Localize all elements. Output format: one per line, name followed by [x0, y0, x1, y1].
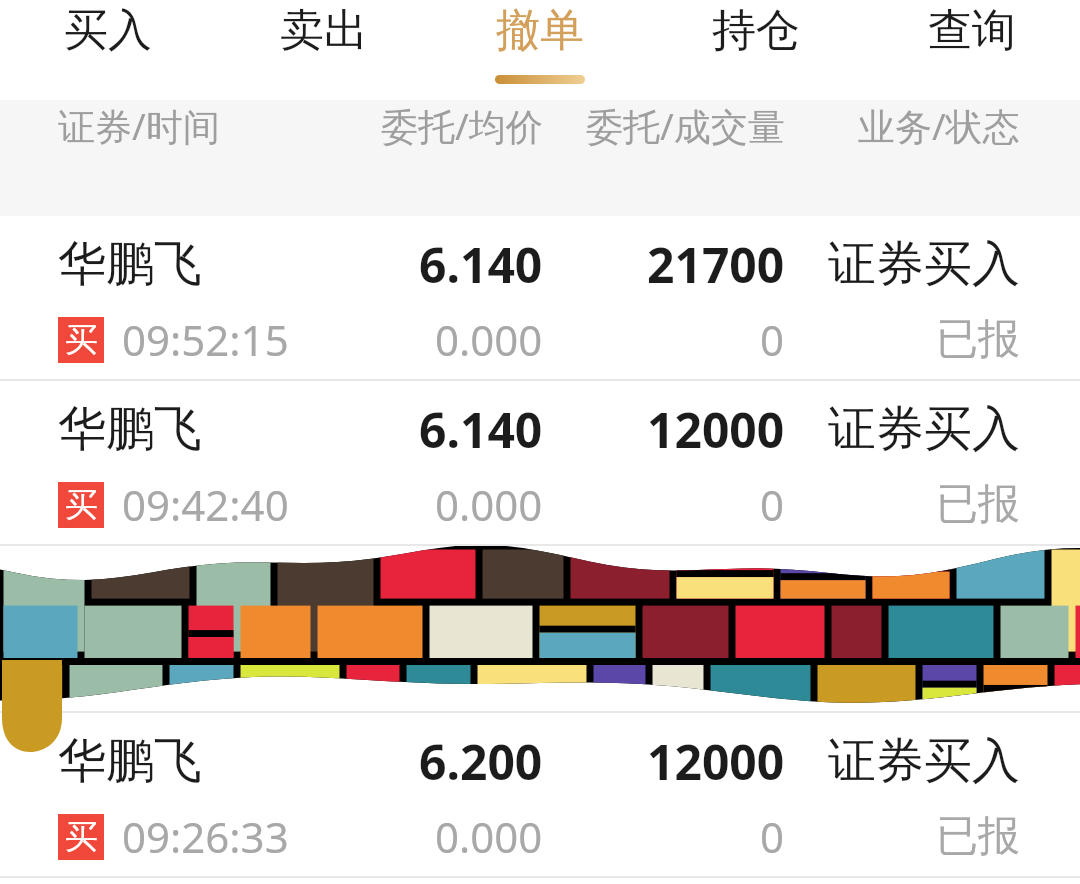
staticText: 持仓	[712, 3, 800, 58]
staticText: 12000	[647, 397, 785, 462]
button[interactable]: 华鹏飞	[0, 216, 1080, 379]
staticText: 12000	[647, 729, 785, 794]
button[interactable]: 卖出	[216, 0, 432, 100]
button[interactable]: 撤单	[432, 0, 648, 100]
staticText: 买	[65, 816, 98, 858]
staticText: 证券买入	[828, 399, 1020, 459]
staticText: 查询	[928, 3, 1016, 58]
staticText: 卖出	[280, 3, 368, 58]
staticText: 华鹏飞	[58, 399, 202, 459]
staticText: 证券买入	[828, 731, 1020, 791]
staticText: 撤单	[496, 3, 584, 58]
staticText: 09:42:40	[122, 476, 289, 533]
staticText: 6.140	[419, 232, 543, 297]
staticText: 0.000	[435, 808, 543, 865]
staticText: 华鹏飞	[58, 234, 202, 294]
staticText: 华鹏飞	[58, 731, 202, 791]
staticText: 6.140	[419, 397, 543, 462]
staticText: 证券买入	[828, 234, 1020, 294]
staticText: 已报	[936, 313, 1020, 366]
staticText: 6.200	[419, 729, 543, 794]
button[interactable]: 持仓	[648, 0, 864, 100]
staticText: 委托/成交量	[586, 100, 785, 151]
staticText: 0	[760, 311, 785, 368]
button[interactable]: 买入	[0, 0, 216, 100]
staticText: 09:26:33	[122, 808, 289, 865]
button[interactable]: 华鹏飞	[0, 381, 1080, 544]
button[interactable]: 华鹏飞	[0, 713, 1080, 876]
staticText: 0.000	[435, 311, 543, 368]
staticText: 已报	[936, 478, 1020, 531]
staticText: 09:52:15	[122, 311, 289, 368]
staticText: 证券/时间	[58, 100, 220, 151]
staticText: 0	[760, 476, 785, 533]
staticText: 买	[65, 319, 98, 361]
staticText: 业务/状态	[858, 100, 1020, 151]
staticText: 买	[65, 484, 98, 526]
staticText: 委托/均价	[381, 100, 543, 151]
button[interactable]	[0, 546, 1080, 711]
button[interactable]: 查询	[864, 0, 1080, 100]
staticText: 0	[760, 808, 785, 865]
staticText: 已报	[936, 810, 1020, 863]
staticText: 0.000	[435, 476, 543, 533]
staticText: 21700	[647, 232, 785, 297]
staticText: 买入	[64, 3, 152, 58]
